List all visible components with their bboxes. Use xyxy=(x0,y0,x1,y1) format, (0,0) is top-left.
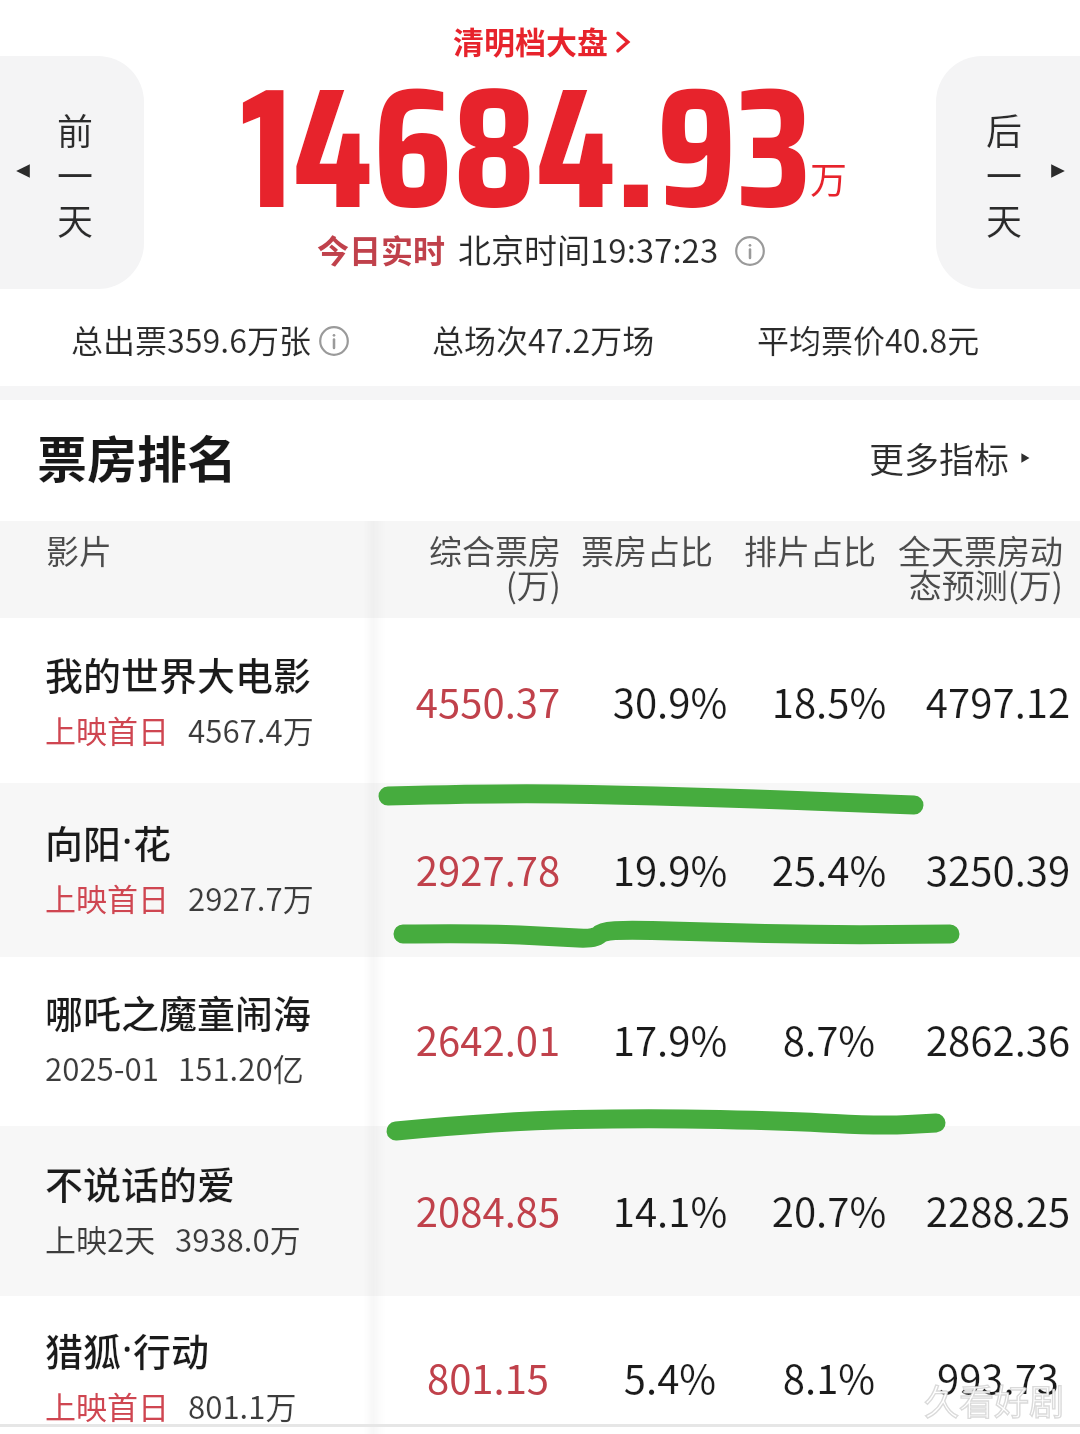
other: Previous day xyxy=(14,162,32,180)
staticText: 25.4% xyxy=(739,840,919,898)
staticText: 影片 xyxy=(46,526,112,574)
button[interactable] xyxy=(0,791,1080,957)
staticText: 151.20亿 xyxy=(178,1045,304,1090)
staticText: 全天票房动 态预测(万) xyxy=(890,526,1063,608)
button[interactable]: 后 一 天 xyxy=(936,56,1080,289)
button[interactable]: 更多指标 xyxy=(869,432,1032,483)
staticText: 2288.25 xyxy=(908,1181,1080,1239)
staticText: · xyxy=(122,814,133,866)
staticText: 14.1% xyxy=(580,1181,760,1239)
staticText: 17.9% xyxy=(580,1010,760,1068)
staticText: 上映首日 xyxy=(45,707,169,752)
staticText: 2642.01 xyxy=(398,1010,578,1068)
staticText: 2025-01 xyxy=(45,1045,159,1090)
staticText: 我的世界大电影 xyxy=(45,646,312,701)
staticText: 哪吒之魔童闹海 xyxy=(45,984,312,1039)
staticText: 30.9% xyxy=(580,672,760,730)
staticText: 4567.4万 xyxy=(188,707,314,752)
staticText: 前 一 天 xyxy=(55,103,95,245)
button[interactable] xyxy=(0,958,1080,1127)
staticText: 8.7% xyxy=(739,1010,919,1068)
staticText: 801.15 xyxy=(398,1348,578,1406)
staticText: 票房占比 xyxy=(563,526,713,574)
staticText: 993.73 xyxy=(908,1348,1080,1406)
button[interactable] xyxy=(0,618,1080,790)
staticText: 上映首日 xyxy=(45,1383,169,1428)
staticText: 清明档大盘 xyxy=(453,18,608,63)
staticText: 20.7% xyxy=(739,1181,919,1239)
button[interactable] xyxy=(0,1128,1080,1290)
staticText: 2927.7万 xyxy=(188,875,314,920)
staticText: 19.9% xyxy=(580,840,760,898)
staticText: 14684.93 xyxy=(240,14,812,282)
staticText: 久看好剧 xyxy=(924,1374,1065,1425)
staticText: 2927.78 xyxy=(398,840,578,898)
staticText: 4797.12 xyxy=(908,672,1080,730)
staticText: 上映首日 xyxy=(45,875,169,920)
staticText: 猎狐 xyxy=(45,1322,122,1377)
staticText: 801.1万 xyxy=(188,1383,297,1428)
staticText: 更多指标 xyxy=(869,432,1010,483)
staticText: 今日实时 xyxy=(317,226,446,272)
staticText: 总出票359.6万张 xyxy=(71,316,311,362)
button[interactable]: 前 一 天 xyxy=(0,56,144,289)
staticText: 花 xyxy=(133,814,172,869)
staticText: 后 一 天 xyxy=(984,103,1024,245)
staticText: 8.1% xyxy=(739,1348,919,1406)
staticText: 平均票价40.8元 xyxy=(757,316,980,362)
staticText: 久看好剧 xyxy=(924,1374,1065,1425)
staticText: 万 xyxy=(810,151,847,205)
staticText: 向阳 xyxy=(45,814,122,869)
staticText: · xyxy=(122,1322,133,1374)
staticText: 不说话的爱 xyxy=(45,1155,236,1210)
staticText: 2084.85 xyxy=(398,1181,578,1239)
other: Info xyxy=(735,236,765,266)
staticText: 3938.0万 xyxy=(175,1216,301,1261)
staticText: 综合票房 (万) xyxy=(381,526,561,608)
staticText: 行动 xyxy=(133,1322,210,1377)
staticText: 4550.37 xyxy=(398,672,578,730)
staticText: 5.4% xyxy=(580,1348,760,1406)
staticText: 北京时间19:37:23 xyxy=(458,225,719,273)
other: Info xyxy=(319,326,349,356)
staticText: 3250.39 xyxy=(908,840,1080,898)
staticText: 总场次47.2万场 xyxy=(432,316,655,362)
other: Next day xyxy=(1049,162,1067,180)
staticText: 排片占比 xyxy=(726,526,876,574)
staticText: 票房排名 xyxy=(37,420,237,492)
button[interactable] xyxy=(0,1291,1080,1434)
staticText: 上映2天 xyxy=(45,1216,156,1261)
staticText: 18.5% xyxy=(739,672,919,730)
staticText: 2862.36 xyxy=(908,1010,1080,1068)
button[interactable]: 清明档大盘 xyxy=(453,18,634,63)
